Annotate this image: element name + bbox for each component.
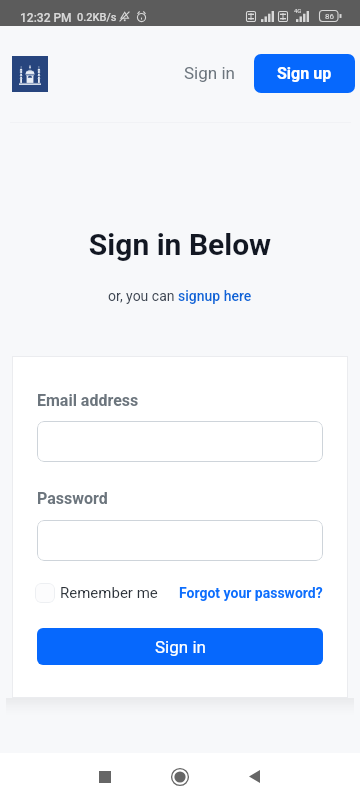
button[interactable]: Sign up [254, 54, 355, 93]
staticText: 86 [325, 12, 334, 21]
staticText: Email address [37, 391, 139, 410]
staticText: Remember me [60, 584, 158, 602]
button[interactable]: Text field [37, 421, 323, 462]
staticText: Sign in Below [0, 227, 360, 262]
staticText: Forgot your password? [179, 585, 323, 601]
button[interactable]: Sign in [37, 628, 323, 665]
staticText: Sign up [277, 64, 332, 83]
staticText: Password [37, 489, 108, 508]
staticText: Sign in [155, 637, 206, 657]
button[interactable]: Forgot your password? [179, 582, 323, 604]
button[interactable]: Remember me [35, 582, 158, 604]
staticText: 4G [294, 7, 302, 14]
staticText: 0.2KB/s [77, 11, 117, 24]
button[interactable]: Home [156, 753, 204, 800]
staticText: signup here [178, 288, 252, 304]
staticText: 12:32 PM [20, 11, 72, 25]
staticText: Sign in [184, 63, 235, 83]
staticText: or, you can [108, 288, 178, 304]
button[interactable]: Back [230, 753, 278, 800]
button[interactable]: Sign in [172, 50, 247, 96]
button[interactable]: signup here [178, 288, 252, 304]
button[interactable]: Home [12, 56, 48, 92]
button[interactable]: Recent apps [81, 753, 129, 800]
button[interactable]: Text field [37, 520, 323, 561]
